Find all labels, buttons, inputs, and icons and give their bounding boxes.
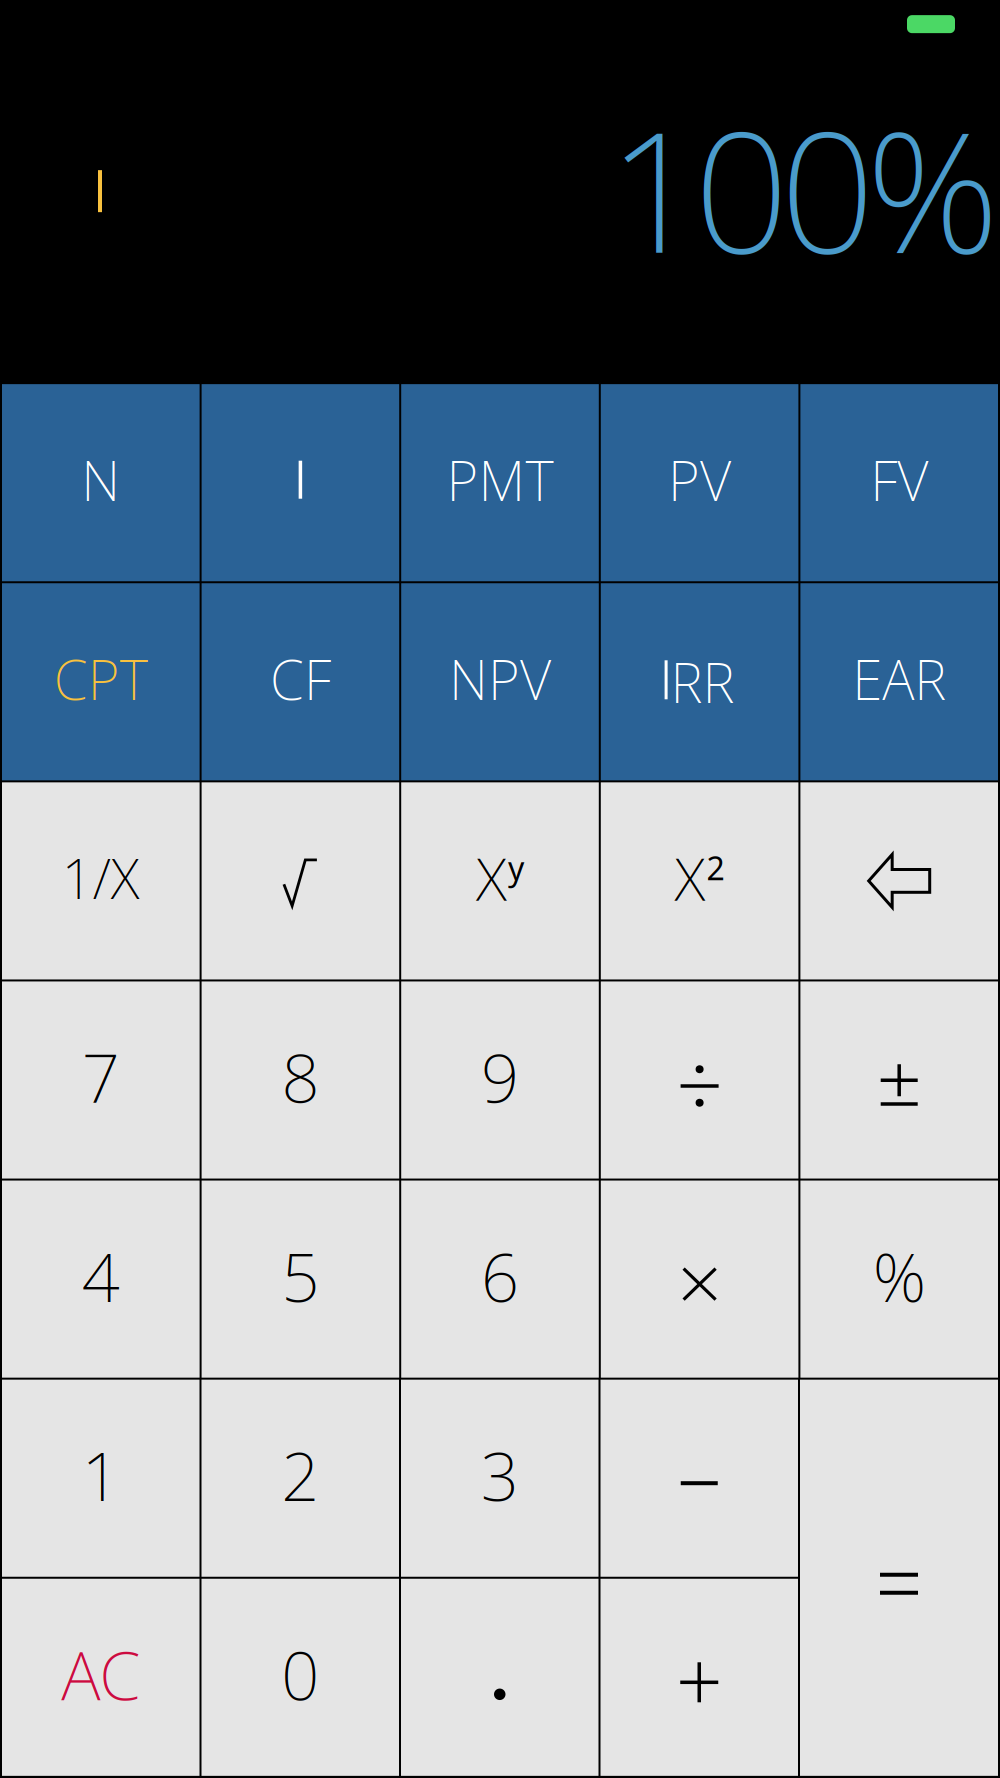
button[interactable]: 2	[201, 1380, 399, 1577]
button[interactable]: Decimal point	[401, 1579, 598, 1776]
staticText: X	[476, 839, 507, 917]
staticText: PMT	[446, 443, 553, 516]
staticText: y	[508, 846, 524, 889]
button[interactable]: PMT	[401, 384, 599, 581]
staticText: AC	[61, 1630, 140, 1718]
button[interactable]: 5	[202, 1180, 399, 1378]
staticText: 1/X	[62, 842, 140, 914]
button[interactable]: Square root	[202, 782, 399, 979]
staticText: 4	[82, 1232, 120, 1320]
button[interactable]: PV	[601, 384, 798, 581]
button[interactable]: 1/X	[2, 782, 200, 979]
button[interactable]: 3	[401, 1380, 598, 1577]
staticText: 7	[82, 1033, 120, 1121]
button[interactable]: Multiply	[601, 1180, 798, 1378]
staticText: RR	[671, 645, 735, 718]
button[interactable]: Backspace	[800, 782, 998, 979]
button[interactable]: 4	[2, 1180, 200, 1378]
staticText: X	[675, 839, 706, 917]
staticText: NPV	[449, 642, 551, 715]
button[interactable]: Equals	[800, 1380, 998, 1776]
button[interactable]: EAR	[800, 583, 998, 780]
button[interactable]: 0	[201, 1579, 399, 1776]
button[interactable]: Minus	[600, 1380, 798, 1577]
button[interactable]: CF	[202, 583, 399, 780]
button[interactable]: 6	[401, 1180, 599, 1378]
staticText: 100%	[608, 77, 1000, 299]
button[interactable]: IRR	[601, 583, 798, 780]
staticText: N	[81, 443, 120, 516]
staticText: PV	[668, 443, 731, 516]
staticText: 2	[707, 846, 725, 889]
staticText: 5	[281, 1232, 319, 1320]
staticText: CPT	[54, 642, 148, 715]
button[interactable]: AC	[2, 1579, 199, 1776]
button[interactable]: Plus	[600, 1579, 798, 1776]
staticText: 6	[481, 1232, 519, 1320]
button[interactable]: Plus minus	[800, 981, 998, 1178]
button[interactable]: X squared	[601, 782, 798, 979]
button[interactable]: FV	[800, 384, 998, 581]
staticText: 2	[281, 1431, 319, 1519]
button[interactable]: 7	[2, 981, 200, 1178]
staticText: %	[873, 1232, 926, 1320]
staticText: 8	[281, 1033, 319, 1121]
button[interactable]: 8	[202, 981, 399, 1178]
staticText: EAR	[852, 642, 946, 715]
button[interactable]: 9	[401, 981, 599, 1178]
staticText: 9	[481, 1033, 519, 1121]
staticText: FV	[870, 443, 928, 516]
button[interactable]: NPV	[401, 583, 599, 780]
button[interactable]: %	[800, 1180, 998, 1378]
staticText: 1	[82, 1431, 120, 1519]
staticText: CF	[270, 642, 331, 715]
staticText: 0	[281, 1630, 319, 1718]
staticText: 3	[481, 1431, 519, 1519]
button[interactable]: 1	[2, 1380, 199, 1577]
button[interactable]: Divide	[601, 981, 798, 1178]
button[interactable]: I	[202, 384, 399, 581]
button[interactable]: CPT	[2, 583, 200, 780]
button[interactable]: N	[2, 384, 200, 581]
button[interactable]: X to the power of y	[401, 782, 599, 979]
